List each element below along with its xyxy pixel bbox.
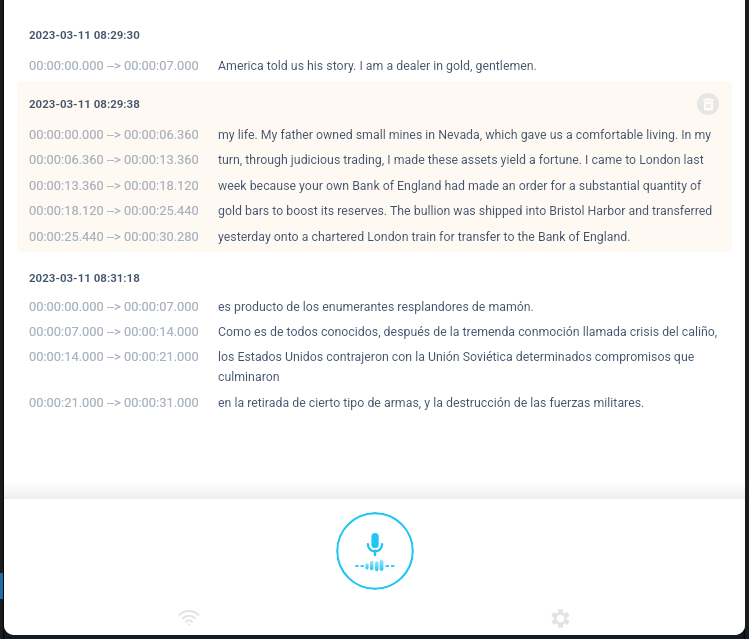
staticText: 2023-03-11 08:29:38 (29, 95, 140, 111)
staticText: 00:00:18.120 --> 00:00:25.440 (29, 199, 218, 219)
staticText: 00:00:00.000 --> 00:00:07.000 (29, 295, 218, 315)
staticText: los Estados Unidos contrajeron con la Un… (218, 345, 718, 385)
staticText: Como es de todos conocidos, después de l… (218, 320, 718, 340)
staticText: 00:00:25.440 --> 00:00:30.280 (29, 225, 218, 245)
staticText: 2023-03-11 08:29:30 (29, 26, 140, 42)
staticText: 00:00:14.000 --> 00:00:21.000 (29, 345, 218, 365)
staticText: 00:00:21.000 --> 00:00:31.000 (29, 391, 218, 411)
staticText: es producto de los enumerantes resplando… (218, 295, 718, 315)
staticText: gold bars to boost its reserves. The bul… (218, 199, 718, 219)
staticText: 00:00:07.000 --> 00:00:14.000 (29, 320, 218, 340)
button[interactable]: Delete (697, 93, 719, 115)
staticText: 00:00:00.000 --> 00:00:06.360 (29, 123, 218, 143)
staticText: 00:00:00.000 --> 00:00:07.000 (29, 54, 218, 74)
staticText: turn, through judicious trading, I made … (218, 148, 718, 168)
staticText: America told us his story. I am a dealer… (218, 54, 718, 74)
staticText: 2023-03-11 08:31:18 (29, 269, 140, 285)
button[interactable] (17, 81, 732, 252)
staticText: en la retirada de cierto tipo de armas, … (218, 391, 718, 411)
button[interactable]: Settings (538, 596, 582, 635)
staticText: yesterday onto a chartered London train … (218, 225, 718, 245)
button[interactable]: Record (336, 512, 414, 590)
button[interactable]: Network (167, 596, 211, 635)
staticText: 00:00:13.360 --> 00:00:18.120 (29, 174, 218, 194)
staticText: 00:00:06.360 --> 00:00:13.360 (29, 148, 218, 168)
staticText: my life. My father owned small mines in … (218, 123, 718, 143)
staticText: week because your own Bank of England ha… (218, 174, 718, 194)
